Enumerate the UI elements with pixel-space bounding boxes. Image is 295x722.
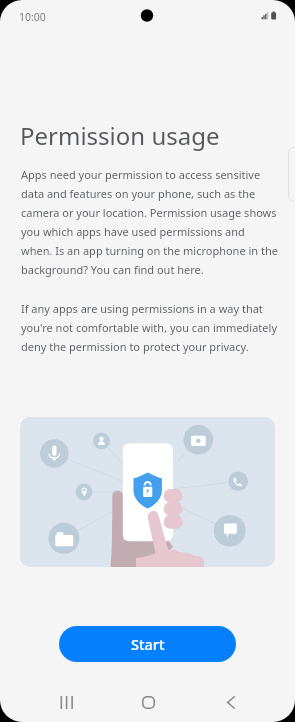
staticText: Permission usage	[20, 119, 220, 152]
button[interactable]: Start	[59, 626, 236, 662]
staticText: Start	[131, 634, 165, 654]
staticText: 10:00	[19, 10, 46, 24]
staticText: If any apps are using permissions in a w…	[21, 301, 278, 354]
staticText: Apps need your permission to access sens…	[21, 167, 278, 277]
button[interactable]: Recents	[44, 684, 88, 720]
button[interactable]: Home	[126, 684, 170, 720]
button[interactable]: Back	[209, 684, 253, 720]
